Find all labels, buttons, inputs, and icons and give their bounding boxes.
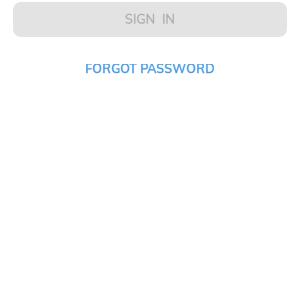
button[interactable]: FORGOT PASSWORD bbox=[0, 58, 300, 80]
staticText: FORGOT PASSWORD bbox=[85, 61, 215, 76]
button[interactable]: SIGN IN bbox=[13, 2, 287, 37]
staticText: SIGN IN bbox=[125, 11, 175, 27]
